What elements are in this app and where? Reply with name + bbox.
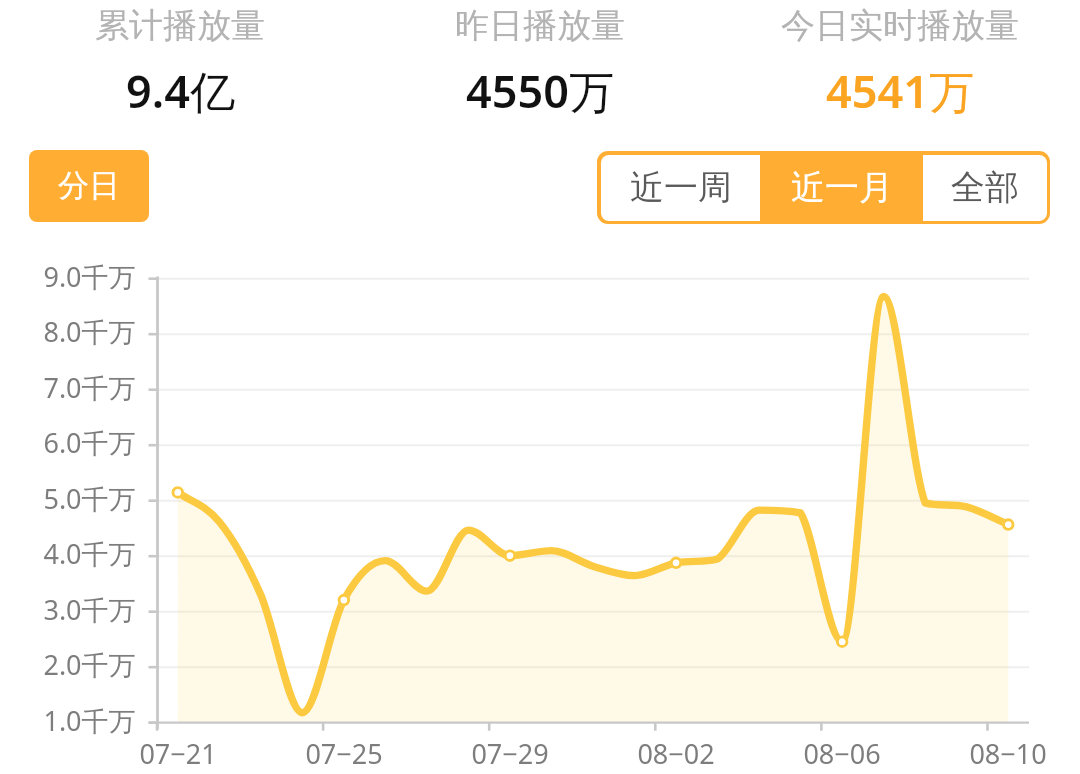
- staticText: 08−10: [969, 735, 1047, 772]
- staticText: 8.0千万: [43, 313, 136, 350]
- staticText: 1.0千万: [43, 702, 136, 739]
- button[interactable]: 分日: [29, 150, 149, 222]
- button[interactable]: 近一周: [601, 155, 760, 221]
- staticText: 4550万: [466, 60, 614, 120]
- staticText: 07−25: [305, 735, 383, 772]
- staticText: 5.0千万: [43, 480, 136, 517]
- staticText: 3.0千万: [43, 591, 136, 628]
- staticText: 今日实时播放量: [781, 4, 1019, 47]
- staticText: 累计播放量: [95, 4, 265, 47]
- staticText: 7.0千万: [43, 369, 136, 406]
- staticText: 分日: [58, 166, 120, 205]
- button[interactable]: 全部: [923, 155, 1047, 221]
- staticText: 6.0千万: [43, 424, 136, 461]
- button[interactable]: 近一月: [760, 155, 923, 221]
- staticText: 2.0千万: [43, 646, 136, 683]
- staticText: 9.0千万: [43, 258, 136, 295]
- staticText: 4.0千万: [43, 535, 136, 572]
- staticText: 昨日播放量: [455, 4, 625, 47]
- staticText: 全部: [951, 166, 1019, 209]
- staticText: 08−06: [803, 735, 881, 772]
- staticText: 08−02: [637, 735, 715, 772]
- staticText: 07−21: [139, 735, 217, 772]
- staticText: 近一月: [791, 166, 893, 209]
- staticText: 07−29: [471, 735, 549, 772]
- staticText: 近一周: [630, 166, 732, 209]
- staticText: 4541万: [826, 60, 974, 120]
- staticText: 9.4亿: [126, 60, 235, 120]
